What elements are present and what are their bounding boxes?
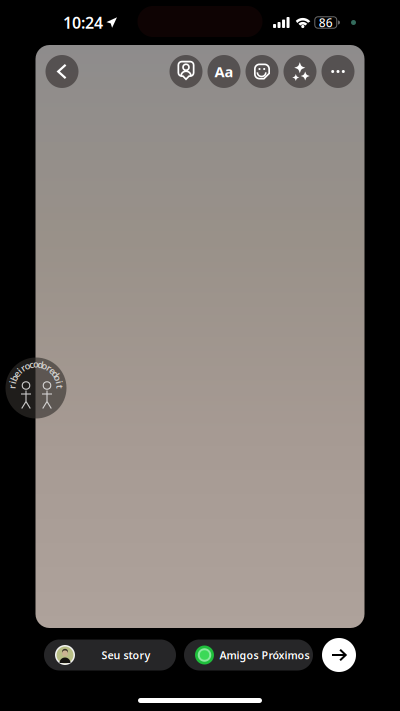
staticText: Aa [214, 62, 233, 81]
staticText: e [33, 358, 38, 370]
staticText: o [33, 358, 39, 370]
staticText: r [34, 358, 38, 370]
staticText: o [33, 358, 39, 370]
staticText: t [34, 358, 38, 370]
staticText: i [34, 358, 37, 370]
staticText: i [34, 358, 37, 370]
button[interactable]: Add text [207, 55, 240, 88]
staticText: Amigos Próximos [219, 648, 309, 662]
staticText: o [33, 358, 39, 370]
button[interactable]: Send [322, 638, 356, 672]
staticText: r [34, 358, 38, 370]
button[interactable]: More options [321, 55, 354, 88]
button[interactable]: Amigos Próximos [184, 639, 313, 670]
staticText: Seu story [101, 648, 150, 662]
staticText: d [33, 358, 39, 370]
button[interactable]: Effects [283, 55, 316, 88]
staticText: i [34, 358, 37, 370]
staticText: b [33, 358, 39, 370]
staticText: r [34, 358, 38, 370]
staticText: 10:24 [63, 12, 103, 33]
button[interactable]: Back [45, 55, 78, 88]
button[interactable]: Seu story [44, 639, 176, 670]
staticText: e [33, 358, 38, 370]
button[interactable]: Tag people [169, 55, 202, 88]
staticText: 86 [319, 14, 333, 30]
staticText: c [33, 358, 38, 370]
button[interactable]: Stickers [245, 55, 278, 88]
staticText: o [33, 358, 39, 370]
staticText: d [33, 358, 39, 370]
